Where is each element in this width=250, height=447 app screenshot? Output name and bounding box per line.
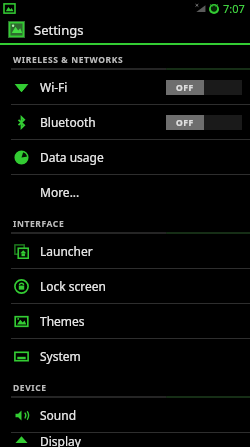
button[interactable]: Wi-Fi: [0, 70, 250, 104]
button[interactable]: Settings icon: [0, 16, 250, 43]
staticText: Settings: [34, 21, 84, 39]
staticText: More...: [40, 184, 80, 200]
staticText: Data usage: [40, 149, 104, 165]
button[interactable]: Launcher: [0, 234, 250, 268]
staticText: WIRELESS & NETWORKS: [13, 54, 124, 66]
button[interactable]: Lock screen: [0, 269, 250, 303]
staticText: OFF: [176, 82, 194, 94]
staticText: Lock screen: [40, 278, 107, 294]
staticText: 7:07: [223, 1, 245, 16]
button[interactable]: Themes: [0, 304, 250, 338]
other: Settings icon: [8, 21, 25, 38]
button[interactable]: System: [0, 339, 250, 373]
button[interactable]: More...: [0, 175, 250, 209]
button[interactable]: Toggle off: [166, 115, 242, 130]
button[interactable]: Sound: [0, 398, 250, 432]
staticText: System: [40, 348, 81, 364]
staticText: OFF: [176, 117, 194, 129]
staticText: Themes: [40, 313, 85, 329]
button[interactable]: Data usage: [0, 140, 250, 174]
staticText: Launcher: [40, 243, 93, 259]
button[interactable]: Toggle off: [166, 80, 242, 95]
staticText: INTERFACE: [13, 218, 65, 230]
staticText: Wi-Fi: [40, 79, 68, 95]
button[interactable]: Display: [0, 433, 250, 447]
staticText: Sound: [40, 407, 77, 423]
staticText: Bluetooth: [40, 114, 96, 130]
staticText: DEVICE: [13, 382, 47, 394]
staticText: Display: [40, 433, 81, 447]
button[interactable]: Bluetooth: [0, 105, 250, 139]
